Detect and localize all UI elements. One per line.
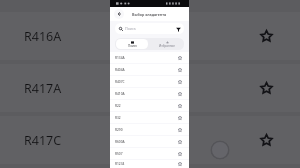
button[interactable]: Избранное xyxy=(150,39,183,49)
staticText: R134A xyxy=(115,56,125,60)
staticText: R22 xyxy=(115,104,121,108)
button[interactable]: R417C xyxy=(24,116,275,164)
staticText: R417C xyxy=(24,132,62,149)
staticText: Избранное xyxy=(159,44,175,48)
button[interactable]: Favourite R134A xyxy=(177,55,183,61)
button[interactable]: R1234 xyxy=(115,160,183,168)
button[interactable]: R134A xyxy=(115,52,183,63)
button[interactable]: Favourite R600A xyxy=(177,139,183,145)
button[interactable]: R417A xyxy=(24,64,275,112)
button[interactable]: Поиск xyxy=(119,23,182,34)
button[interactable]: Поиск xyxy=(116,39,148,49)
button[interactable]: Add R417A to favourites xyxy=(257,79,275,97)
staticText: Поиск xyxy=(128,44,137,48)
button[interactable]: R407C xyxy=(115,76,183,87)
button[interactable]: Favourite R407C xyxy=(177,79,183,85)
staticText: R507 xyxy=(115,152,123,156)
button[interactable]: Add R416A to favourites xyxy=(257,27,275,45)
button[interactable]: Favourite R32 xyxy=(177,115,183,121)
staticText: R32 xyxy=(115,116,121,120)
button[interactable]: R507 xyxy=(115,148,183,159)
button[interactable]: Add refrigerant xyxy=(210,140,230,160)
button[interactable]: R410A xyxy=(115,88,183,99)
staticText: R407C xyxy=(115,80,125,84)
button[interactable]: Favourite R410A xyxy=(177,91,183,97)
staticText: R290 xyxy=(115,128,123,132)
staticText: R404A xyxy=(115,68,125,72)
staticText: R1234 xyxy=(115,162,125,166)
button[interactable]: R600A xyxy=(115,136,183,147)
button[interactable]: Back xyxy=(114,9,124,19)
button[interactable]: R22 xyxy=(115,100,183,111)
button[interactable]: Favourite R507 xyxy=(177,151,183,157)
button[interactable]: R404A xyxy=(115,64,183,75)
button[interactable]: Favourite R1234 xyxy=(177,161,183,167)
staticText: Выбор хладагента xyxy=(132,12,167,17)
button[interactable]: Favourite R404A xyxy=(177,67,183,73)
staticText: R600A xyxy=(115,140,125,144)
staticText: R410A xyxy=(115,92,125,96)
button[interactable]: Add R417C to favourites xyxy=(257,131,275,149)
button[interactable]: Filter xyxy=(174,25,182,33)
staticText: R417A xyxy=(24,80,62,97)
button[interactable]: R32 xyxy=(115,112,183,123)
button[interactable]: R416A xyxy=(24,12,275,60)
button[interactable]: R290 xyxy=(115,124,183,135)
button[interactable]: Favourite R290 xyxy=(177,127,183,133)
staticText: R416A xyxy=(24,28,62,45)
button[interactable]: Favourite R22 xyxy=(177,103,183,109)
staticText: Поиск xyxy=(125,26,136,31)
